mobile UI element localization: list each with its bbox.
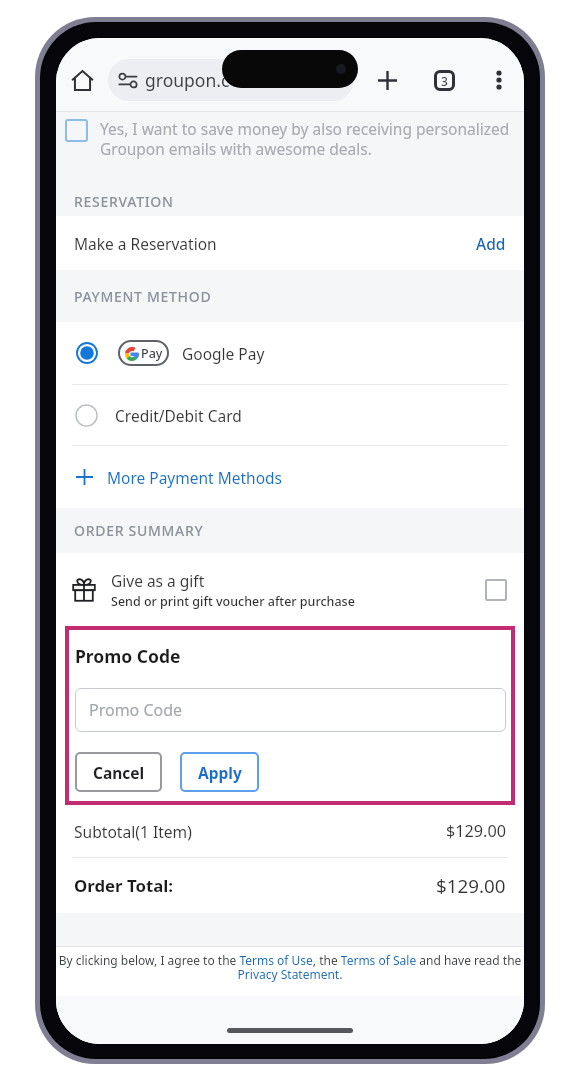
staticText: Promo Code bbox=[89, 699, 183, 721]
staticText: Make a Reservation bbox=[74, 233, 217, 254]
staticText: Pay bbox=[141, 345, 163, 362]
button[interactable]: Promo Code bbox=[75, 688, 506, 732]
button[interactable]: Cancel bbox=[75, 752, 162, 792]
button[interactable]: More options bbox=[483, 64, 515, 96]
button[interactable]: Opt in for emails bbox=[65, 119, 88, 142]
staticText: groupon.c bbox=[145, 68, 230, 92]
button[interactable]: Give as a gift checkbox bbox=[485, 579, 507, 601]
staticText: ORDER SUMMARY bbox=[74, 521, 204, 540]
button[interactable]: More Payment Methods bbox=[56, 446, 524, 508]
staticText: $129.00 bbox=[446, 820, 506, 842]
button[interactable]: Apply bbox=[180, 752, 259, 792]
staticText: More Payment Methods bbox=[107, 467, 283, 488]
button[interactable]: Credit/Debit Card bbox=[56, 385, 524, 445]
staticText: Credit/Debit Card bbox=[115, 405, 242, 426]
staticText: Order Total: bbox=[74, 874, 174, 897]
button[interactable]: Tabs bbox=[426, 62, 462, 98]
staticText: Yes, I want to save money by also receiv… bbox=[100, 118, 514, 160]
staticText: Google Pay bbox=[182, 343, 265, 364]
staticText: Send or print gift voucher after purchas… bbox=[111, 593, 355, 610]
staticText: RESERVATION bbox=[74, 192, 174, 211]
button[interactable]: Pay bbox=[56, 322, 524, 384]
button[interactable]: groupon.c bbox=[108, 59, 354, 101]
staticText: Promo Code bbox=[75, 644, 181, 668]
staticText: Cancel bbox=[93, 762, 145, 783]
staticText: Apply bbox=[198, 762, 242, 783]
staticText: $129.00 bbox=[436, 873, 506, 899]
staticText: PAYMENT METHOD bbox=[74, 287, 212, 306]
staticText: Subtotal(1 Item) bbox=[74, 821, 192, 842]
button[interactable]: New tab bbox=[369, 62, 405, 98]
staticText: By clicking below, I agree to the Terms … bbox=[57, 952, 523, 983]
staticText: Give as a gift bbox=[111, 570, 205, 591]
staticText: Add bbox=[476, 233, 506, 254]
button[interactable]: Make a Reservation bbox=[56, 216, 524, 270]
button[interactable]: Give as a gift bbox=[56, 553, 524, 626]
staticText: 3 bbox=[441, 73, 448, 89]
button[interactable]: Home bbox=[64, 62, 100, 98]
